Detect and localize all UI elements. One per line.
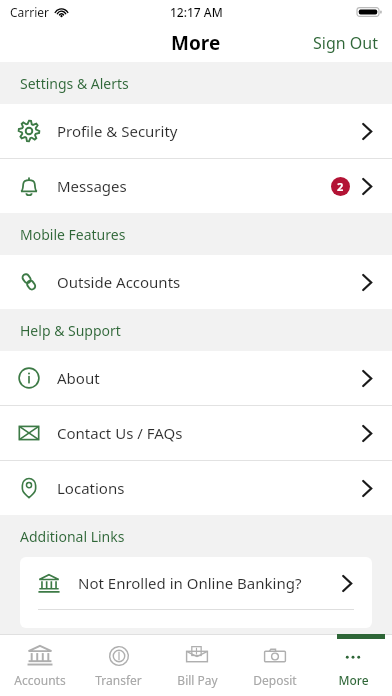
staticText: Profile & Security — [57, 121, 362, 141]
button[interactable]: Contact Us — [0, 406, 392, 460]
staticText: Transfer — [95, 672, 142, 688]
staticText: Outside Accounts — [57, 272, 362, 292]
staticText: 12:17 AM — [170, 4, 223, 20]
staticText: 2 — [337, 179, 344, 194]
staticText: Locations — [57, 478, 362, 498]
staticText: Contact Us / FAQs — [57, 423, 362, 443]
staticText: More — [171, 30, 221, 56]
other: Bank — [38, 572, 60, 594]
other: Transfer — [106, 643, 132, 669]
other: Outside Accounts — [18, 271, 40, 293]
other: Deposit — [262, 643, 288, 669]
staticText: More — [338, 672, 369, 688]
button[interactable]: Settings — [0, 104, 392, 158]
staticText: Settings & Alerts — [20, 74, 129, 93]
staticText: About — [57, 368, 362, 388]
other: About — [18, 367, 40, 389]
button[interactable]: Sign Out — [299, 26, 392, 60]
staticText: Deposit — [253, 672, 297, 688]
staticText: Messages — [57, 176, 331, 196]
other: Settings — [18, 120, 40, 142]
staticText: Sign Out — [313, 32, 378, 54]
button[interactable]: Transfer — [79, 634, 158, 696]
button[interactable]: Bill Pay — [158, 634, 236, 696]
other: More — [340, 643, 366, 669]
other: Locations — [18, 477, 40, 499]
button[interactable]: Deposit — [236, 634, 314, 696]
button[interactable]: Outside Accounts — [0, 255, 392, 309]
staticText: Accounts — [14, 672, 66, 688]
staticText: Not Enrolled in Online Banking? — [78, 573, 342, 593]
button[interactable]: More — [314, 634, 392, 696]
staticText: Mobile Features — [20, 225, 126, 244]
button[interactable]: Bank — [20, 557, 372, 609]
button[interactable]: Messages — [0, 159, 392, 213]
button[interactable]: Locations — [0, 461, 392, 515]
other: Messages — [18, 175, 40, 197]
staticText: Bill Pay — [177, 672, 218, 688]
staticText: Help & Support — [20, 321, 121, 340]
button[interactable]: About — [0, 351, 392, 405]
other: Contact Us — [18, 422, 40, 444]
staticText: Carrier — [10, 4, 50, 20]
other: Accounts — [27, 643, 53, 669]
button[interactable]: Accounts — [0, 634, 79, 696]
other: Bill Pay — [184, 643, 210, 669]
staticText: Additional Links — [20, 527, 125, 546]
